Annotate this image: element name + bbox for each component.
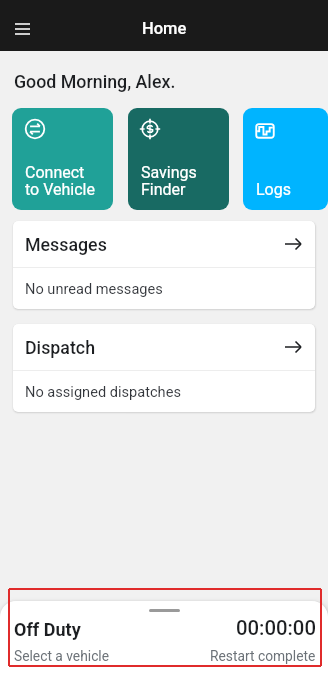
staticText: Dispatch xyxy=(25,337,96,358)
staticText: No assigned dispatches xyxy=(25,383,181,400)
button[interactable]: Savings Finder xyxy=(128,108,229,210)
staticText: Off Duty xyxy=(14,619,81,640)
staticText: Good Morning, Alex. xyxy=(14,71,176,92)
staticText: No unread messages xyxy=(25,280,163,297)
button[interactable]: Logs xyxy=(243,108,328,210)
staticText: Connect to Vehicle xyxy=(25,163,95,199)
staticText: Savings Finder xyxy=(141,163,197,199)
staticText: Restart complete xyxy=(210,648,316,664)
staticText: Select a vehicle xyxy=(14,648,110,664)
staticText: Home xyxy=(142,19,187,38)
button[interactable]: Messages xyxy=(13,221,315,309)
staticText: Messages xyxy=(25,234,107,255)
staticText: Logs xyxy=(256,180,291,199)
button[interactable]: Connect to Vehicle xyxy=(12,108,113,210)
button[interactable]: Dispatch xyxy=(13,324,315,412)
staticText: 00:00:00 xyxy=(236,616,316,640)
button[interactable]: Off Duty xyxy=(0,601,328,673)
button[interactable]: Menu xyxy=(0,7,44,51)
